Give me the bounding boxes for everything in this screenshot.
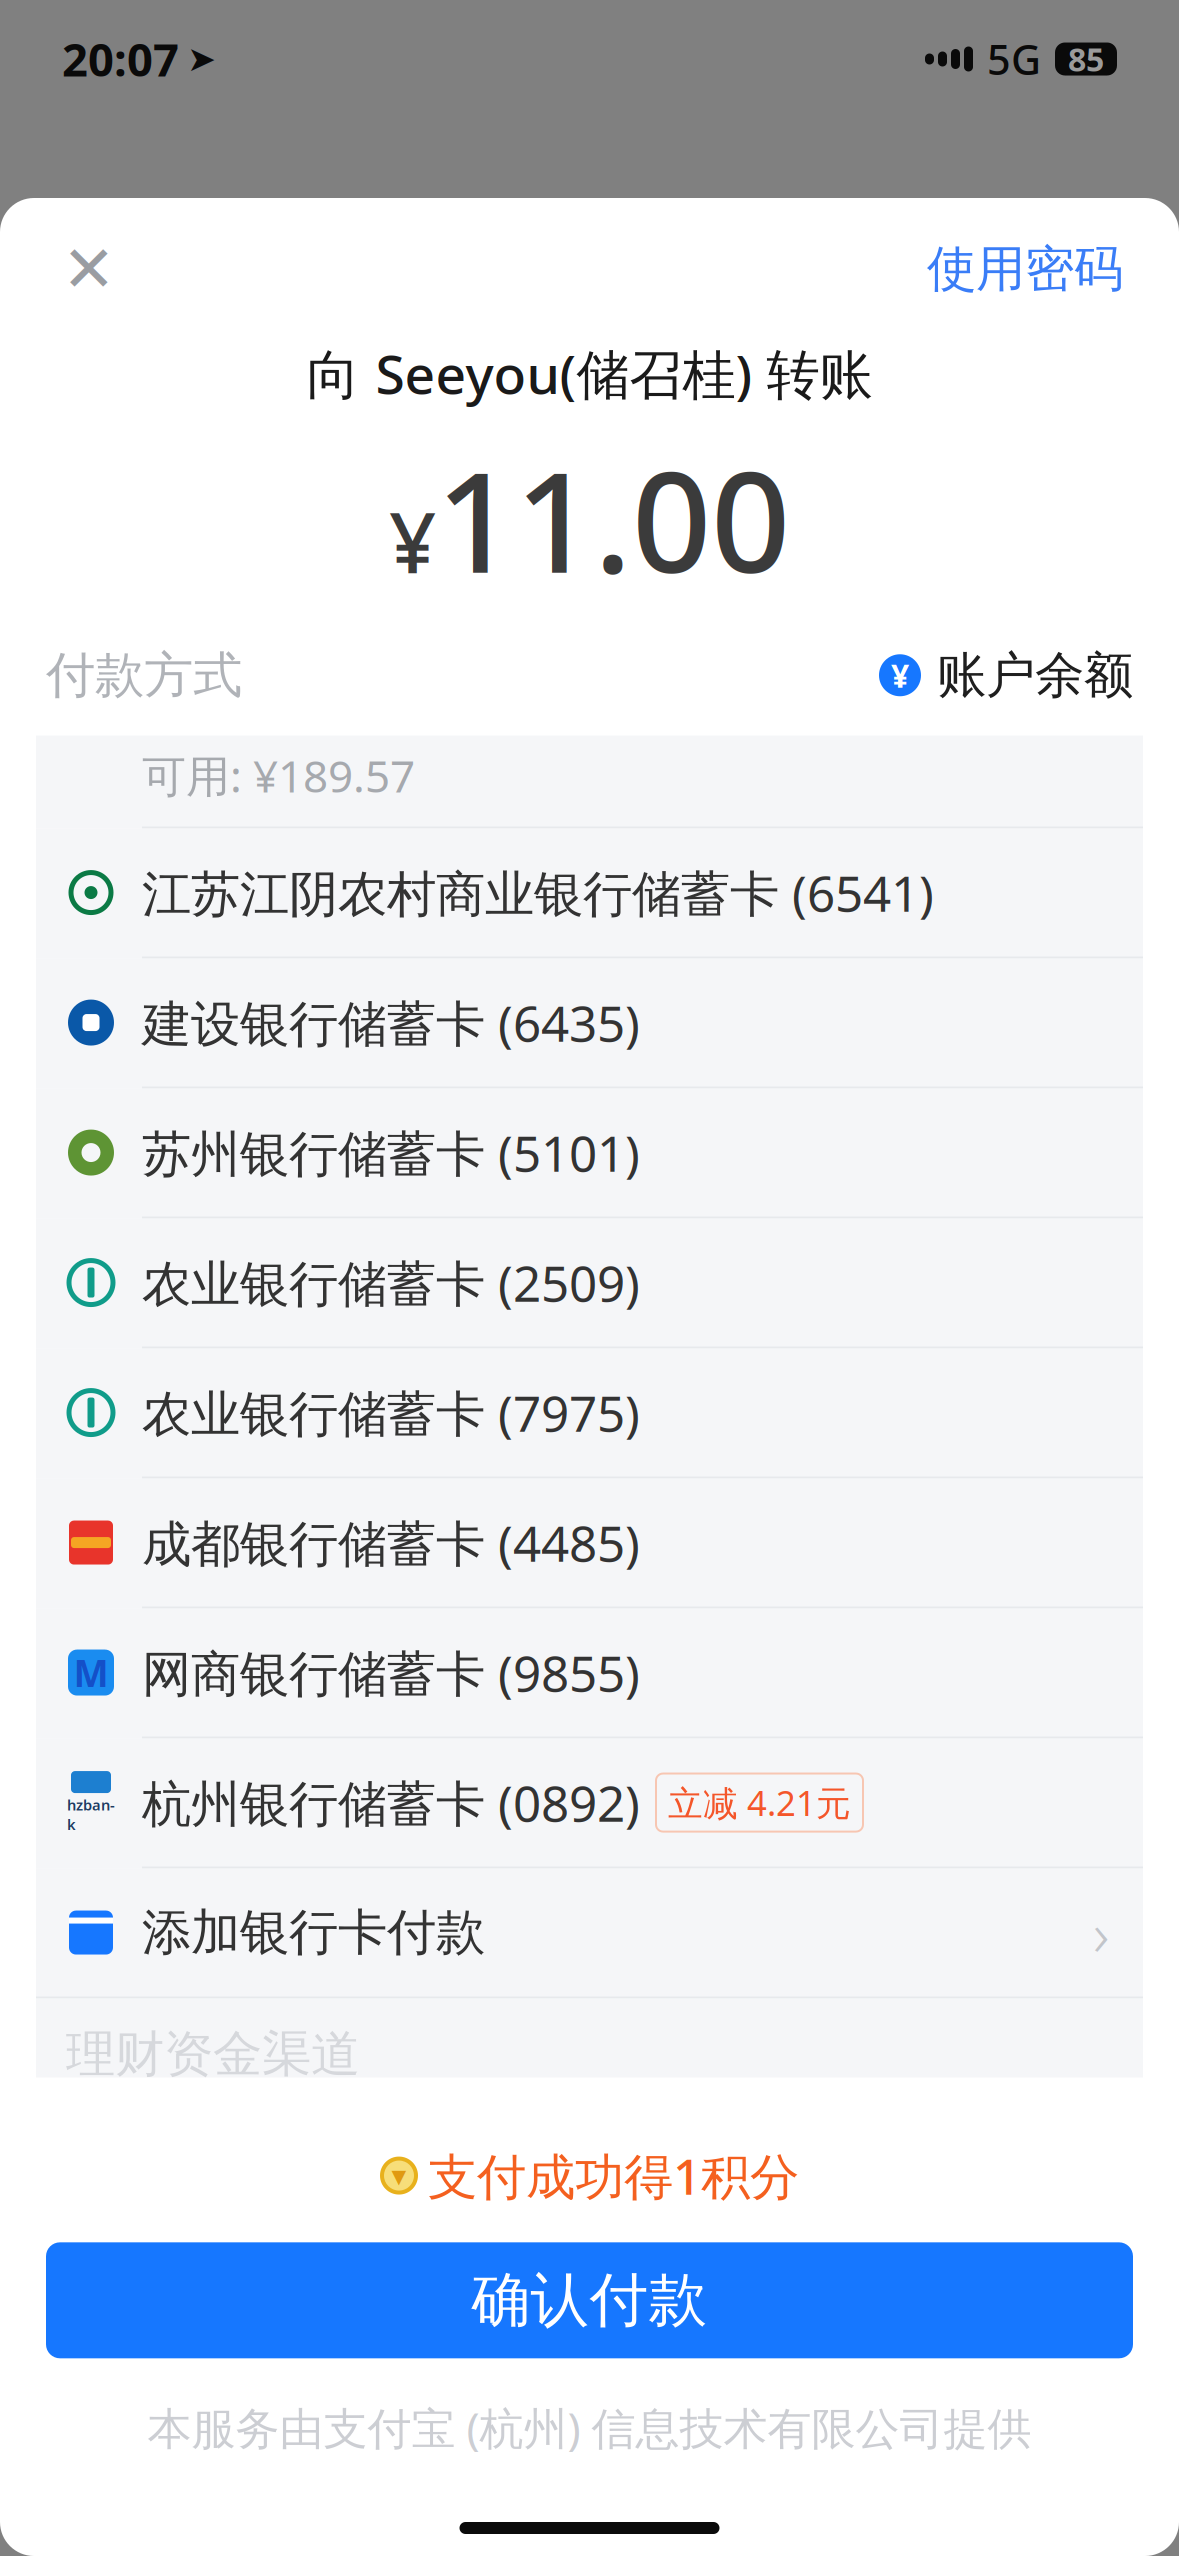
staticText: ➤ (187, 39, 216, 79)
button[interactable]: M (36, 1609, 1143, 1739)
staticText: 确认付款 (471, 2264, 707, 2336)
staticText: 账户余额 (937, 645, 1133, 706)
staticText: 农业银行储蓄卡 (7975) (142, 1380, 640, 1445)
staticText: 杭州银行储蓄卡 (0892) (142, 1770, 640, 1835)
staticText: 建设银行储蓄卡 (6435) (142, 990, 640, 1055)
button[interactable]: 江苏江阴农村商业银行储蓄卡 (6541) (36, 829, 1143, 959)
staticText: 苏州银行储蓄卡 (5101) (142, 1120, 640, 1185)
staticText: 使用密码 (927, 239, 1123, 299)
staticText: 农业银行储蓄卡 (2509) (142, 1250, 640, 1315)
staticText: ¥ (389, 486, 436, 595)
button[interactable]: 添加银行卡付款 (36, 1869, 1143, 1999)
staticText: ▾ (391, 2159, 406, 2192)
staticText: 网商银行储蓄卡 (9855) (142, 1640, 640, 1705)
button[interactable]: 农业银行储蓄卡 (2509) (36, 1219, 1143, 1349)
staticText: 本服务由支付宝 (杭州) 信息技术有限公司提供 (147, 2398, 1031, 2457)
staticText: 向 Seeyou(储召桂) 转账 (306, 338, 872, 409)
staticText: 可用: ¥189.57 (142, 746, 415, 804)
staticText: 理财资金渠道 (66, 2024, 360, 2085)
button[interactable]: 成都银行储蓄卡 (4485) (36, 1479, 1143, 1609)
staticText: 立减 4.21元 (668, 1779, 851, 1825)
button[interactable]: ¥ (879, 645, 1133, 706)
staticText: 11.00 (436, 427, 790, 611)
staticText: hzbank (67, 1795, 115, 1834)
button[interactable]: 使用密码 (917, 226, 1133, 312)
staticText: 20:07 (62, 29, 179, 89)
button[interactable]: 确认付款 (46, 2242, 1133, 2358)
staticText: ¥ (891, 654, 909, 696)
button[interactable]: 建设银行储蓄卡 (6435) (36, 959, 1143, 1089)
staticText: › (1093, 1892, 1109, 1973)
staticText: 付款方式 (46, 645, 242, 706)
button[interactable]: hzbank (36, 1739, 1143, 1869)
staticText: M (73, 1648, 108, 1697)
staticText: 85 (1068, 38, 1104, 80)
button[interactable]: 苏州银行储蓄卡 (5101) (36, 1089, 1143, 1219)
staticText: 添加银行卡付款 (142, 1902, 485, 1963)
button[interactable]: 农业银行储蓄卡 (7975) (36, 1349, 1143, 1479)
staticText: 支付成功得1积分 (428, 2143, 799, 2208)
staticText: ✕ (62, 233, 116, 305)
staticText: 成都银行储蓄卡 (4485) (142, 1510, 640, 1575)
button[interactable]: 关闭 (46, 226, 132, 312)
staticText: 5G (987, 32, 1041, 86)
staticText: 江苏江阴农村商业银行储蓄卡 (6541) (142, 860, 934, 925)
